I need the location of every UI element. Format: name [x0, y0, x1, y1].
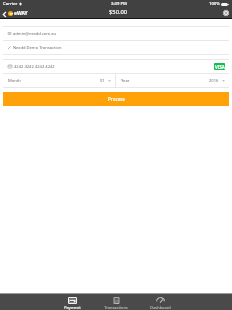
staticText: $50.00 — [109, 8, 128, 16]
button[interactable]: Year — [121, 74, 225, 87]
button[interactable]: Payment — [50, 294, 94, 310]
button[interactable]: Nexdd Demo Transaction — [8, 41, 225, 54]
button[interactable]: Month — [8, 74, 111, 87]
button[interactable]: 4242 4242 4242 4242 — [8, 60, 225, 73]
staticText: Dashboard — [150, 305, 171, 310]
staticText: admin@nexdd.com.au — [13, 31, 57, 37]
staticText: 100% — [209, 1, 220, 7]
staticText: Carrier — [3, 1, 18, 7]
staticText: 4242 4242 4242 4242 — [14, 64, 55, 70]
staticText: Year — [121, 78, 130, 84]
button[interactable]: Dashboard — [138, 294, 182, 310]
button[interactable]: Transactions — [94, 294, 138, 310]
button[interactable]: Process — [3, 92, 229, 106]
button[interactable]: Back — [1, 9, 7, 19]
staticText: Transactions — [104, 305, 128, 310]
staticText: 2016 — [209, 78, 219, 84]
button[interactable]: Settings — [222, 9, 230, 17]
staticText: Process — [108, 96, 125, 102]
staticText: Payment — [64, 305, 81, 310]
staticText: VISA — [215, 64, 225, 70]
button[interactable]: admin@nexdd.com.au — [8, 27, 225, 40]
staticText: eWAY — [14, 10, 28, 17]
staticText: 3:39 PM — [111, 1, 127, 7]
staticText: 01 — [100, 78, 105, 84]
staticText: Month — [8, 78, 21, 84]
staticText: Nexdd Demo Transaction — [13, 45, 62, 51]
